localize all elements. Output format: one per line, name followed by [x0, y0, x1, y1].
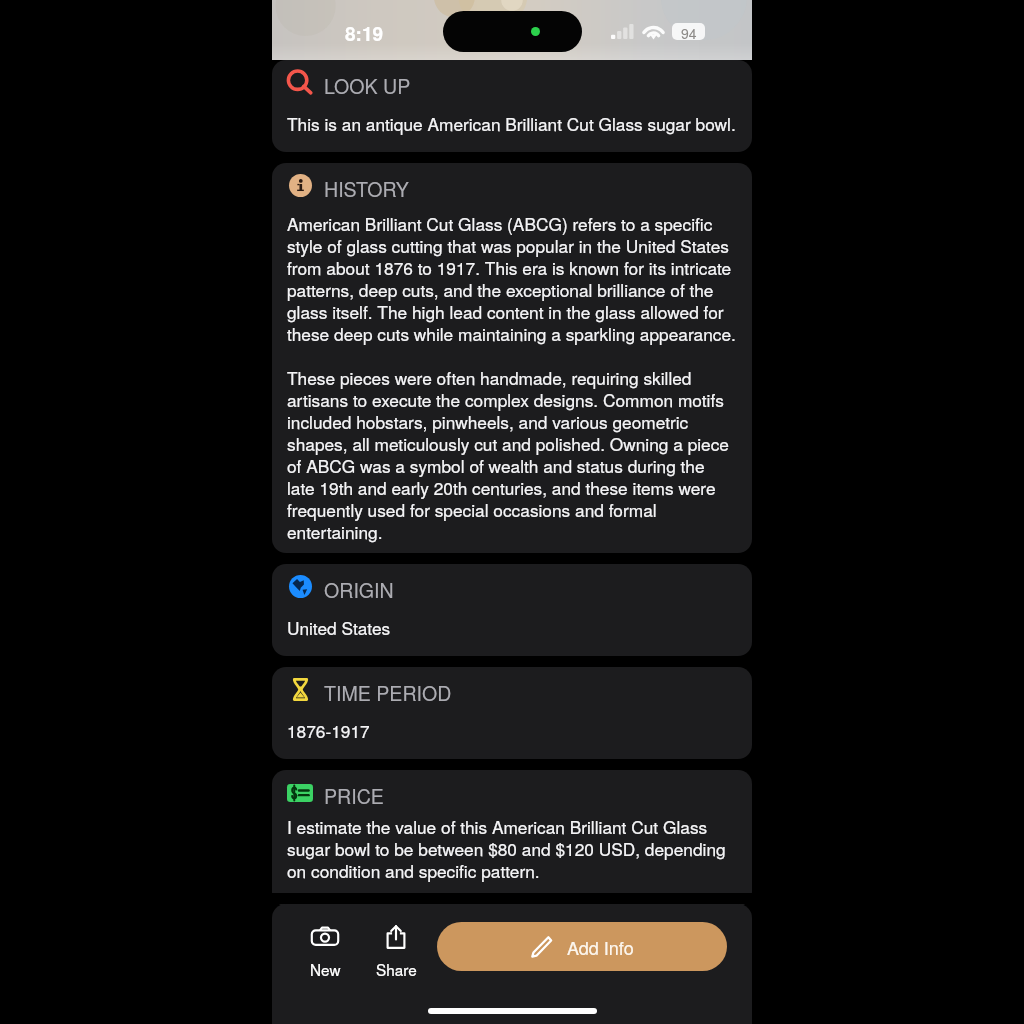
- staticText: United States: [287, 617, 391, 639]
- staticText: 1876-1917: [287, 720, 370, 742]
- staticText: ORIGIN: [324, 575, 394, 598]
- staticText: 94: [681, 23, 697, 40]
- staticText: I estimate the value of this American Br…: [287, 816, 736, 882]
- staticText: LOOK UP: [324, 71, 411, 94]
- button[interactable]: Share: [373, 922, 419, 980]
- button[interactable]: HISTORY: [272, 163, 752, 553]
- staticText: Share: [376, 958, 417, 980]
- staticText: HISTORY: [324, 174, 409, 197]
- staticText: New: [310, 958, 341, 980]
- other: Share: [381, 922, 411, 952]
- staticText: PRICE: [324, 781, 384, 804]
- staticText: American Brilliant Cut Glass (ABCG) refe…: [287, 213, 736, 345]
- other: New: [310, 922, 340, 952]
- staticText: This is an antique American Brilliant Cu…: [287, 113, 736, 135]
- button[interactable]: LOOK UP: [272, 60, 752, 152]
- button[interactable]: TIME PERIOD: [272, 667, 752, 759]
- button[interactable]: New: [305, 922, 345, 980]
- button[interactable]: ORIGIN: [272, 564, 752, 656]
- staticText: TIME PERIOD: [324, 678, 452, 701]
- staticText: These pieces were often handmade, requir…: [287, 367, 736, 543]
- staticText: 8:19: [345, 20, 384, 47]
- button[interactable]: Add Info: [437, 922, 727, 971]
- staticText: Add Info: [567, 934, 634, 960]
- button[interactable]: PRICE: [272, 770, 752, 906]
